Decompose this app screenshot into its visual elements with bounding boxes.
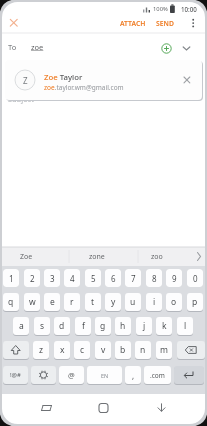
staticText: g	[100, 320, 106, 332]
button[interactable]: EN	[87, 366, 122, 384]
staticText: a	[19, 320, 24, 332]
staticText: c	[80, 344, 85, 356]
button[interactable]: u	[125, 293, 141, 311]
staticText: Subject	[8, 94, 34, 104]
button[interactable]	[156, 38, 177, 59]
staticText: Zoe Taylor	[44, 72, 83, 83]
button[interactable]: c	[74, 341, 90, 359]
staticText: v	[101, 344, 106, 356]
button[interactable]: l	[177, 317, 193, 335]
button[interactable]: f	[75, 317, 91, 335]
staticText: 1	[9, 273, 14, 284]
button[interactable]	[4, 14, 24, 32]
staticText: f	[82, 320, 85, 332]
staticText: z	[39, 344, 43, 356]
staticText: 10:00	[181, 5, 197, 13]
button[interactable]: p	[187, 293, 203, 311]
button[interactable]: zone	[77, 247, 117, 266]
button[interactable]	[177, 38, 197, 59]
button[interactable]: 7	[125, 269, 141, 287]
staticText: q	[8, 296, 14, 308]
button[interactable]	[177, 341, 205, 359]
button[interactable]: v	[95, 341, 111, 359]
staticText: e	[50, 296, 55, 308]
button[interactable]: m	[156, 341, 172, 359]
button[interactable]: a	[13, 317, 29, 335]
button[interactable]: y	[105, 293, 121, 311]
staticText: x	[60, 344, 65, 356]
staticText: b	[120, 344, 126, 356]
button[interactable]: x	[54, 341, 70, 359]
button[interactable]: b	[115, 341, 131, 359]
staticText: 100%	[153, 5, 168, 13]
staticText: m	[160, 344, 168, 356]
staticText: 3	[50, 273, 55, 284]
button[interactable]	[32, 398, 60, 420]
staticText: ATTACH	[120, 19, 146, 28]
button[interactable]: 4	[64, 269, 80, 287]
button[interactable]: !@#	[3, 366, 28, 384]
button[interactable]: ATTACH	[116, 15, 150, 31]
button[interactable]: i	[146, 293, 162, 311]
button[interactable]: o	[166, 293, 182, 311]
button[interactable]: h	[115, 317, 131, 335]
staticText: zoe	[31, 42, 44, 52]
staticText: o	[171, 296, 177, 308]
button[interactable]: Z	[5, 60, 202, 100]
button[interactable]: k	[156, 317, 172, 335]
staticText: SEND	[156, 19, 174, 28]
staticText: s	[40, 320, 45, 332]
staticText: 6	[111, 273, 116, 284]
button[interactable]: zoo	[137, 247, 177, 266]
button[interactable]: @	[59, 366, 84, 384]
button[interactable]: g	[95, 317, 111, 335]
button[interactable]: 6	[105, 269, 121, 287]
staticText: 7	[131, 273, 136, 284]
button[interactable]: 9	[166, 269, 182, 287]
staticText: 2	[30, 273, 35, 284]
staticText: p	[192, 296, 198, 308]
button[interactable]: .com	[144, 366, 171, 384]
button[interactable]: 2	[24, 269, 40, 287]
button[interactable]	[31, 366, 56, 384]
button[interactable]	[186, 14, 200, 32]
button[interactable]: 8	[146, 269, 162, 287]
button[interactable]: 3	[44, 269, 60, 287]
button[interactable]: SEND	[151, 15, 179, 31]
staticText: .com	[150, 371, 165, 380]
button[interactable]: j	[136, 317, 152, 335]
button[interactable]: e	[44, 293, 60, 311]
button[interactable]: ,	[125, 366, 141, 384]
button[interactable]: n	[135, 341, 151, 359]
staticText: 4	[70, 273, 75, 284]
button[interactable]: z	[33, 341, 49, 359]
button[interactable]	[90, 398, 118, 420]
staticText: 8	[152, 273, 157, 284]
button[interactable]: w	[24, 293, 40, 311]
staticText: k	[162, 320, 167, 332]
staticText: j	[143, 320, 146, 332]
staticText: 5	[91, 273, 96, 284]
button[interactable]: s	[34, 317, 50, 335]
button[interactable]: 0	[187, 269, 203, 287]
staticText: n	[140, 344, 146, 356]
button[interactable]: q	[3, 293, 19, 311]
staticText: zone	[89, 252, 105, 262]
button[interactable]: Zoe	[6, 247, 46, 266]
button[interactable]: t	[85, 293, 101, 311]
button[interactable]: r	[64, 293, 80, 311]
button[interactable]: d	[54, 317, 70, 335]
button[interactable]: 1	[3, 269, 19, 287]
staticText: 0	[193, 273, 198, 284]
staticText: Zoe	[20, 252, 33, 262]
button[interactable]: 5	[85, 269, 101, 287]
staticText: y	[111, 296, 116, 308]
staticText: @	[68, 370, 75, 380]
staticText: 9	[172, 273, 177, 284]
button[interactable]	[148, 398, 176, 420]
staticText: r	[70, 296, 74, 308]
button[interactable]	[3, 341, 29, 359]
button[interactable]	[174, 366, 204, 384]
staticText: zoo	[151, 252, 163, 262]
staticText: ,	[132, 370, 135, 381]
